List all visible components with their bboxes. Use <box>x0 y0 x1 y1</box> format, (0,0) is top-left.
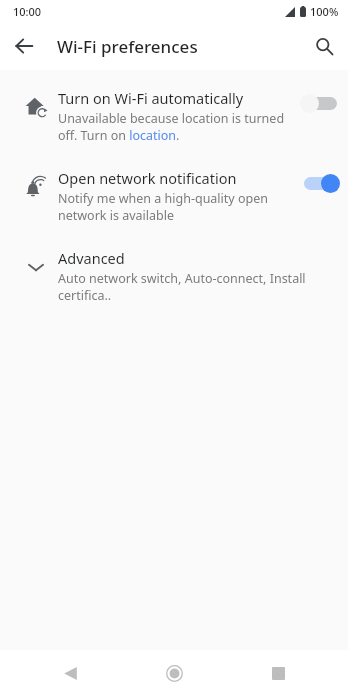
button[interactable]: Advanced <box>0 236 348 316</box>
staticText: Wi-Fi preferences <box>57 35 198 58</box>
button[interactable]: Back <box>5 27 43 65</box>
button[interactable]: Back <box>50 653 90 693</box>
staticText: Unavailable because location is turned o… <box>58 110 285 144</box>
staticText: Notify me when a high-quality open netwo… <box>58 190 268 224</box>
staticText: Advanced <box>58 248 125 268</box>
button[interactable]: Home <box>154 653 194 693</box>
button[interactable]: Turn on Wi-Fi automatically <box>0 76 348 156</box>
button[interactable]: Recent apps <box>258 653 298 693</box>
button[interactable]: Search <box>305 27 343 65</box>
staticText: 100% <box>310 4 339 19</box>
staticText: Auto network switch, Auto-connect, Insta… <box>58 270 334 304</box>
button[interactable]: Open network notification <box>0 156 348 236</box>
staticText: 10:00 <box>13 4 42 19</box>
staticText: Open network notification <box>58 168 237 188</box>
staticText: Turn on Wi-Fi automatically <box>58 88 244 108</box>
